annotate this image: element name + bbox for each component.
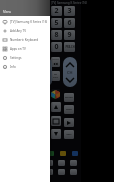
button[interactable]: Smart Hub <box>51 89 60 99</box>
button[interactable]: 1 <box>38 6 49 16</box>
staticText: Add Any TV <box>10 29 26 33</box>
staticText: 8 <box>54 30 59 40</box>
button[interactable]: 3 <box>64 6 75 16</box>
staticText: [TV] Samsung K Series (16) <box>10 20 48 24</box>
button[interactable]: Colour key <box>60 151 66 156</box>
staticText: PRE-CH <box>65 45 75 49</box>
button[interactable]: Up <box>51 102 61 112</box>
staticText: INFO <box>66 108 72 111</box>
button[interactable]: Down <box>51 129 61 139</box>
staticText: 4 <box>41 18 46 28</box>
button[interactable]: INFO <box>64 105 74 114</box>
staticText: BLACK <box>65 96 73 99</box>
button[interactable]: Remote key <box>58 160 65 166</box>
button[interactable]: Colour key <box>72 151 78 156</box>
button[interactable]: EXIT <box>64 130 74 139</box>
staticText: 0 <box>54 42 59 52</box>
button[interactable]: 0 <box>51 42 62 52</box>
staticText: MUTE <box>52 58 59 61</box>
button[interactable]: 5 <box>51 18 62 28</box>
staticText: CH <box>67 70 73 75</box>
button[interactable]: Colour key <box>48 151 54 156</box>
button[interactable]: Play <box>64 118 74 127</box>
staticText: Menu <box>3 10 12 14</box>
button[interactable]: Remote key <box>70 169 77 175</box>
button[interactable]: VOL <box>38 57 52 87</box>
button[interactable]: BLACK <box>64 93 74 102</box>
staticText: EXIT <box>66 133 72 136</box>
button[interactable]: Menu <box>51 116 61 126</box>
staticText: Apps on TV <box>10 47 26 51</box>
button[interactable]: Add Any TV <box>0 26 50 35</box>
button[interactable]: MUTE <box>51 57 60 67</box>
staticText: Numberic Keyboard <box>10 38 39 42</box>
button[interactable]: Remote key <box>58 169 65 175</box>
staticText: CH LIST <box>53 73 58 79</box>
staticText: 6 <box>67 18 72 28</box>
button[interactable]: [TV] Samsung K Series (16) <box>0 17 50 26</box>
staticText: 9 <box>67 30 72 40</box>
button[interactable]: 8 <box>51 30 62 40</box>
button[interactable]: Info <box>0 62 50 71</box>
staticText: 1 <box>41 6 46 16</box>
button[interactable]: Remote key <box>46 169 53 175</box>
button[interactable]: CH <box>63 57 77 87</box>
button[interactable]: Numberic Keyboard <box>0 35 50 44</box>
button[interactable]: 4 <box>38 18 49 28</box>
staticText: Info <box>10 65 16 69</box>
button[interactable]: 9 <box>64 30 75 40</box>
button[interactable]: 2 <box>51 6 62 16</box>
staticText: 5 <box>54 18 59 28</box>
button[interactable]: Apps on TV <box>0 44 50 53</box>
button[interactable]: Remote key <box>70 160 77 166</box>
staticText: [TV] Samsung K Series (16) <box>51 1 87 5</box>
staticText: 3 <box>67 6 72 16</box>
button[interactable]: CH LIST <box>51 71 60 81</box>
button[interactable]: 6 <box>64 18 75 28</box>
button[interactable]: Settings <box>0 53 50 62</box>
staticText: Settings <box>10 56 22 60</box>
staticText: 2 <box>54 6 59 16</box>
button[interactable]: PRE-CH <box>64 42 75 52</box>
button[interactable]: Remote key <box>46 160 53 166</box>
